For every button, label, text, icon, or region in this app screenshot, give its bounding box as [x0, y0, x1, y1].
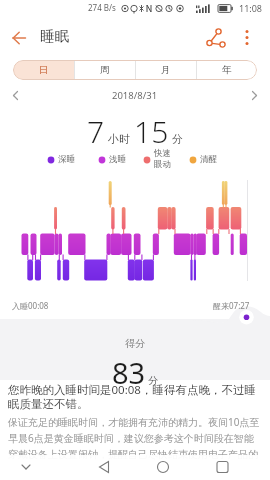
staticText: 小时 [108, 132, 130, 146]
staticText: 得分 [125, 337, 145, 350]
button[interactable]: 日 [13, 60, 74, 80]
button[interactable] [134, 455, 202, 480]
button[interactable] [4, 26, 34, 50]
button[interactable] [202, 26, 230, 50]
staticText: 年 [222, 64, 232, 76]
staticText: 浅睡 [109, 154, 126, 165]
staticText: 2018/8/31 [112, 89, 158, 102]
staticText: 83 [112, 353, 146, 392]
button[interactable] [244, 86, 264, 106]
staticText: 您昨晚的入睡时间是00:08，睡得有点晚，不过睡 眠质量还不错。 [8, 382, 256, 412]
button[interactable] [0, 455, 67, 480]
staticText: 月 [161, 64, 171, 76]
staticText: 日 [39, 64, 49, 76]
button[interactable]: 周 [75, 60, 135, 80]
staticText: 7 [87, 111, 105, 152]
staticText: 274 B/s [88, 2, 116, 13]
staticText: 入睡00:08 [12, 300, 49, 311]
staticText: 快速 眼动 [154, 148, 171, 170]
staticText: 15 [134, 111, 169, 152]
staticText: 11:08 [239, 2, 263, 14]
button[interactable] [67, 455, 134, 480]
button[interactable] [202, 455, 270, 480]
staticText: 分 [148, 374, 158, 387]
button[interactable]: 年 [197, 60, 257, 80]
button[interactable]: 月 [136, 60, 196, 80]
button[interactable] [236, 26, 260, 50]
button[interactable] [6, 86, 26, 106]
staticText: 醒来07:27 [213, 300, 250, 311]
staticText: 保证充足的睡眠时间，才能拥有充沛的精力。夜间10点至 早晨6点是黄金睡眠时间，建… [8, 415, 260, 461]
staticText: 清醒 [200, 154, 217, 165]
staticText: 周 [100, 64, 110, 76]
staticText: 睡眠 [40, 27, 69, 45]
staticText: 深睡 [58, 154, 75, 165]
staticText: 分 [172, 132, 183, 146]
